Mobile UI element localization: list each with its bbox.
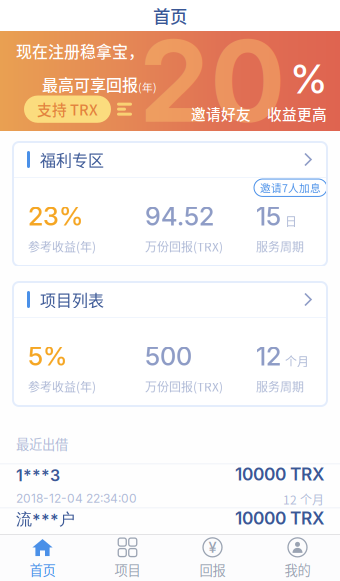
staticText: 参考收益(年) bbox=[28, 378, 96, 395]
staticText: (年) bbox=[138, 79, 157, 94]
staticText: 94.52 bbox=[145, 201, 214, 232]
button[interactable]: 流***户 bbox=[0, 508, 340, 551]
staticText: 20 bbox=[139, 13, 286, 149]
staticText: 500 bbox=[145, 341, 192, 372]
staticText: 邀请好友 bbox=[191, 103, 251, 124]
button[interactable]: 首页 bbox=[0, 532, 85, 581]
staticText: 我的 bbox=[284, 560, 310, 579]
staticText: 支持 TRX bbox=[37, 98, 98, 120]
staticText: 2018-12-04 22:34:00 bbox=[16, 491, 137, 506]
staticText: 最近出借 bbox=[16, 434, 68, 453]
staticText: 23% bbox=[28, 201, 83, 232]
staticText: 1***3 bbox=[16, 466, 60, 485]
button[interactable]: 福利专区 bbox=[13, 142, 327, 177]
staticText: 日 bbox=[285, 212, 297, 230]
staticText: 万份回报(TRX) bbox=[145, 238, 223, 255]
staticText: 5% bbox=[28, 341, 67, 372]
staticText: 首页 bbox=[29, 560, 55, 579]
staticText: 万份回报(TRX) bbox=[145, 378, 223, 395]
staticText: % bbox=[291, 55, 327, 103]
staticText: 收益更高 bbox=[267, 103, 327, 124]
staticText: 首页 bbox=[153, 3, 187, 28]
staticText: 个月 bbox=[285, 352, 309, 370]
staticText: 服务周期 bbox=[256, 378, 304, 395]
staticText: 15 bbox=[256, 201, 281, 232]
staticText: 回报 bbox=[199, 560, 225, 579]
staticText: 最高可享回报 bbox=[42, 72, 138, 96]
button[interactable]: 项目列表 bbox=[13, 282, 327, 317]
button[interactable]: 1***3 bbox=[0, 464, 340, 507]
staticText: 流***户 bbox=[16, 509, 75, 530]
staticText: 12 个月 bbox=[283, 491, 324, 508]
staticText: 现在注册稳拿宝， bbox=[16, 39, 144, 62]
button[interactable]: 项目 bbox=[85, 532, 170, 581]
staticText: 项目列表 bbox=[40, 288, 104, 311]
button[interactable]: ¥ bbox=[170, 532, 255, 581]
button[interactable]: 我的 bbox=[255, 532, 340, 581]
staticText: 福利专区 bbox=[40, 148, 104, 171]
staticText: ¥ bbox=[208, 538, 216, 556]
staticText: 参考收益(年) bbox=[28, 238, 96, 255]
staticText: 项目 bbox=[114, 560, 140, 579]
staticText: 服务周期 bbox=[256, 238, 304, 255]
staticText: 2018-12-04 20:11:00 bbox=[16, 536, 133, 550]
staticText: 邀请7人加息 bbox=[260, 180, 321, 195]
staticText: 12 bbox=[256, 341, 281, 372]
staticText: 10000 TRX bbox=[235, 464, 324, 485]
staticText: 12 个月 bbox=[283, 535, 324, 552]
staticText: 10000 TRX bbox=[235, 508, 324, 529]
